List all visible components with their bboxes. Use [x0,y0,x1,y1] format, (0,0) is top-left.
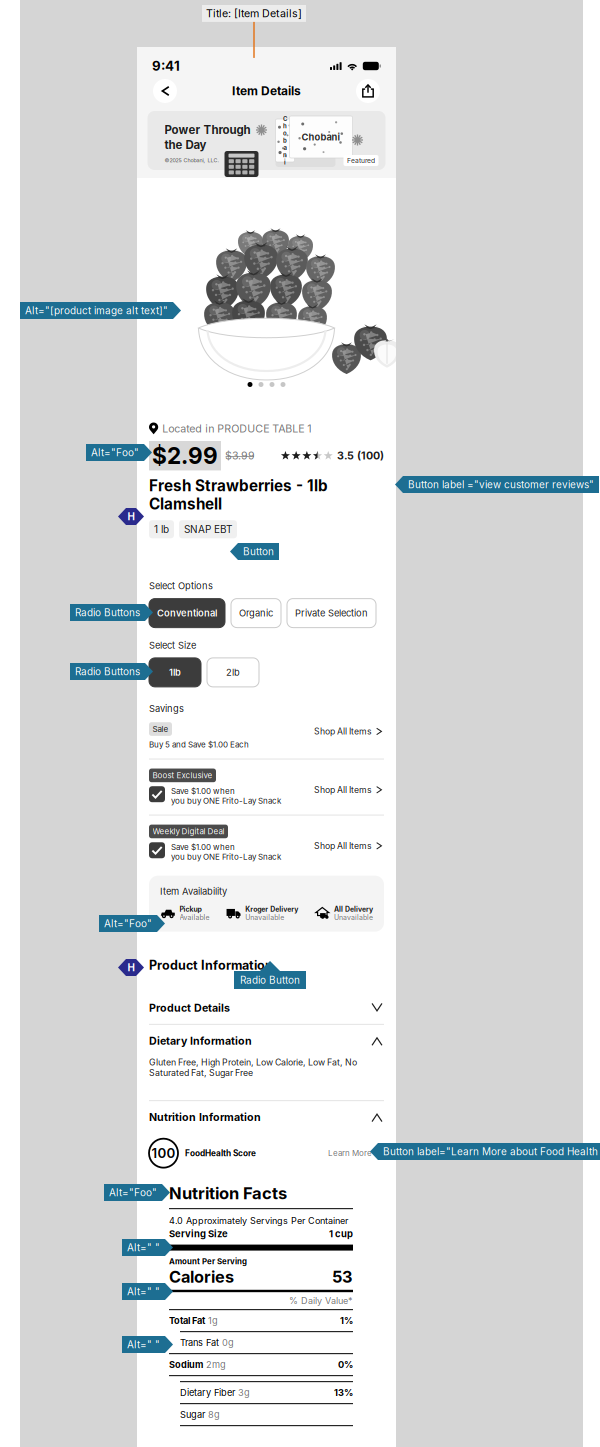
staticText: Nutrition Information [149,1111,261,1124]
staticText: Fresh Strawberries - 1lb [149,476,328,495]
staticText: $2.99 [152,442,218,469]
staticText: 1g [208,1315,218,1326]
button[interactable]: Dietary Information [137,1025,396,1057]
staticText: the Day [164,138,206,152]
staticText: Alt="Foo" [91,446,139,459]
staticText: Unavailable [334,913,373,922]
staticText: 1% [340,1315,353,1326]
button[interactable]: C [147,111,385,170]
staticText: 3.5 (100) [337,449,384,462]
button[interactable]: Private Selection [287,599,376,628]
staticText: 2mg [206,1359,226,1370]
button[interactable]: Share [356,79,380,103]
button[interactable]: Shop All Items [314,726,384,737]
staticText: Available [179,913,209,922]
staticText: SNAP EBT [184,523,232,535]
staticText: Button label="Learn More about Food Heal… [383,1145,600,1158]
staticText: Alt="Foo" [104,917,152,930]
button[interactable]: 2lb [207,658,259,687]
staticText: Radio Buttons [75,606,140,619]
staticText: Total Fat [169,1315,205,1326]
staticText: Alt=" " [127,1285,160,1298]
staticText: Pickup [179,905,201,913]
staticText: Save $1.00 when [171,786,235,796]
staticText: Save $1.00 when [171,842,235,852]
staticText: Button label ="view customer reviews" [408,478,594,491]
staticText: b [283,137,287,144]
staticText: 100 [151,1145,175,1161]
button[interactable]: SNAP EBT [179,520,237,538]
staticText: Item Details [232,84,301,98]
staticText: Organic [239,607,273,619]
staticText: Nutrition Facts [169,1183,287,1203]
staticText: Shop All Items [314,726,372,737]
staticText: Serving Size [169,1228,228,1240]
staticText: Select Options [149,580,213,592]
staticText: All Delivery [334,905,373,913]
button[interactable]: Shop All Items [314,784,384,795]
staticText: Private Selection [295,607,368,619]
button[interactable]: Product Details [137,992,396,1024]
staticText: Sugar [180,1409,205,1420]
button[interactable]: Nutrition Information [137,1101,396,1133]
button[interactable]: Organic [231,599,281,628]
staticText: Title: [Item Details] [206,7,302,20]
staticText: $3.99 [225,449,255,462]
staticText: Located in PRODUCE TABLE 1 [162,422,311,435]
staticText: Dietary Information [149,1034,252,1047]
staticText: Select Size [149,640,196,651]
staticText: FoodHealth Score [185,1148,256,1158]
staticText: Sodium [169,1359,203,1370]
staticText: Chobani [301,131,340,143]
staticText: C [283,115,287,122]
staticText: Gluten Free, High Protein, Low Calorie, … [149,1057,357,1078]
staticText: Savings [149,703,184,714]
staticText: 2lb [226,667,240,678]
staticText: Unavailable [245,913,284,922]
button[interactable]: Conventional [149,599,225,628]
staticText: Alt=" " [127,1241,160,1254]
staticText: Power Through [164,123,250,137]
staticText: 1 cup [329,1228,353,1240]
button[interactable]: View customer reviews [281,449,384,462]
button[interactable]: Learn More about Food Health Score [328,1148,384,1158]
staticText: a [283,144,286,151]
staticText: Dietary Fiber [180,1387,235,1398]
staticText: i [284,159,286,166]
button[interactable]: Back [153,79,177,103]
staticText: Product Details [149,1001,230,1014]
staticText: % Daily Value* [289,1295,353,1306]
staticText: Featured [347,156,375,165]
staticText: Learn More [328,1148,372,1158]
staticText: 1lb [169,667,181,678]
staticText: 0% [338,1359,353,1370]
staticText: 4.0 Approximately Servings Per Container [169,1215,348,1226]
staticText: H [127,961,134,974]
staticText: Boost Exclusive [152,770,212,780]
staticText: Radio Button [240,974,300,986]
staticText: Clamshell [149,495,222,513]
button[interactable]: Shop All Items [314,841,384,851]
staticText: 0g [222,1337,234,1348]
staticText: Alt="[product image alt text]" [25,304,168,317]
staticText: you buy ONE Frito-Lay Snack [171,796,281,806]
staticText: Buy 5 and Save $1.00 Each [149,740,249,750]
button[interactable]: 1lb [149,658,201,687]
staticText: Shop All Items [314,841,372,851]
staticText: 3g [238,1387,250,1398]
staticText: Calories [169,1267,234,1287]
staticText: Sale [152,724,168,734]
staticText: 13% [334,1387,353,1398]
staticText: ©2025 Chobani, LLC. [164,157,219,163]
staticText: Shop All Items [314,784,372,795]
staticText: Item Availability [160,886,227,897]
staticText: o [283,130,287,137]
staticText: Weekly Digital Deal [152,827,224,836]
staticText: Radio Buttons [75,665,140,678]
staticText: you buy ONE Frito-Lay Snack [171,852,281,862]
staticText: 9:41 [152,58,180,74]
staticText: h [283,122,287,130]
staticText: Amount Per Serving [169,1257,247,1266]
staticText: Conventional [157,607,217,619]
staticText: Product Information [149,958,273,973]
